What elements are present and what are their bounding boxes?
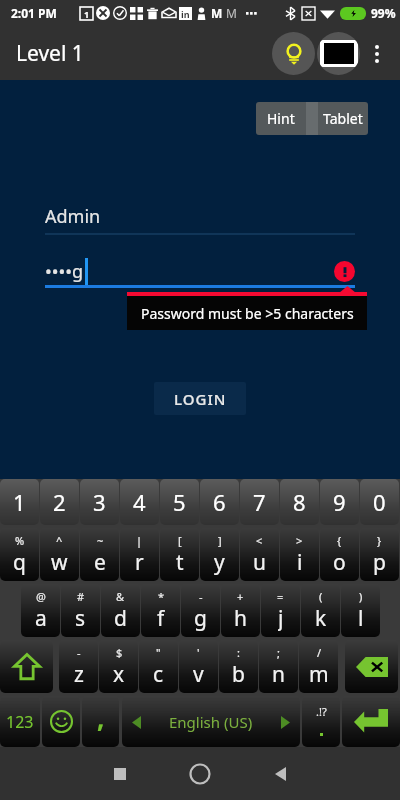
button[interactable]: ^ <box>40 528 79 581</box>
staticText: M <box>226 5 237 21</box>
button[interactable]: } <box>360 528 399 581</box>
staticText: < <box>256 533 263 548</box>
button[interactable]: $ <box>99 640 138 693</box>
staticText: ⋯ <box>245 6 258 21</box>
button[interactable]: " <box>139 640 178 693</box>
button[interactable]: 1 <box>0 479 39 525</box>
button[interactable]: 9 <box>320 479 359 525</box>
staticText: .!? <box>316 704 327 719</box>
staticText: { <box>337 533 342 548</box>
staticText: 5 <box>173 487 186 517</box>
button[interactable]: Recents <box>80 747 160 800</box>
button[interactable]: Hint <box>272 32 315 75</box>
button[interactable]: [ <box>160 528 199 581</box>
button[interactable]: ~ <box>80 528 119 581</box>
button[interactable]: ( <box>301 584 340 637</box>
staticText: - <box>77 645 81 660</box>
button[interactable]: Tablet <box>318 102 368 135</box>
staticText: m <box>309 660 329 687</box>
button[interactable]: Shift <box>0 640 53 693</box>
button[interactable]: Back <box>240 747 320 800</box>
staticText: ~ <box>97 533 104 548</box>
button[interactable]: 8 <box>280 479 319 525</box>
staticText: [ <box>178 533 182 548</box>
staticText: 2:01 PM <box>11 5 57 21</box>
staticText: Admin <box>45 204 101 229</box>
staticText: ] <box>218 533 222 548</box>
button[interactable]: - <box>181 584 220 637</box>
button[interactable]: Home <box>160 747 240 800</box>
staticText: l <box>358 604 364 631</box>
staticText: 8 <box>293 487 306 517</box>
button[interactable]: % <box>0 528 39 581</box>
staticText: @ <box>36 589 46 604</box>
staticText: 123 <box>6 711 34 733</box>
button[interactable]: More options <box>360 37 394 71</box>
button[interactable]: : <box>219 640 258 693</box>
staticText: ••••g <box>45 259 84 284</box>
button[interactable]: Comma <box>82 696 119 747</box>
staticText: : <box>237 645 240 660</box>
staticText: , <box>97 700 105 735</box>
staticText: 4 <box>133 487 146 517</box>
staticText: in <box>181 8 190 20</box>
button[interactable]: | <box>120 528 159 581</box>
staticText: g <box>194 604 207 631</box>
staticText: h <box>234 604 247 631</box>
button[interactable]: LOGIN <box>154 382 246 415</box>
button[interactable]: @ <box>21 584 60 637</box>
button[interactable]: # <box>61 584 100 637</box>
staticText: ; <box>277 645 280 660</box>
button[interactable]: < <box>240 528 279 581</box>
button[interactable]: 2 <box>40 479 79 525</box>
staticText: p <box>373 548 386 575</box>
button[interactable]: + <box>221 584 260 637</box>
button[interactable]: * <box>141 584 180 637</box>
button[interactable]: English (US) <box>122 696 300 747</box>
button[interactable]: - <box>59 640 98 693</box>
staticText: Password must be >5 characters <box>141 304 354 323</box>
staticText: 3 <box>93 487 106 517</box>
staticText: z <box>74 660 84 687</box>
button[interactable]: ) <box>341 584 380 637</box>
button[interactable]: 7 <box>240 479 279 525</box>
button[interactable]: { <box>320 528 359 581</box>
staticText: English (US) <box>169 712 253 732</box>
button[interactable]: = <box>261 584 300 637</box>
button[interactable]: Punctuation <box>302 696 340 747</box>
staticText: + <box>237 589 244 604</box>
button[interactable]: Emoji <box>42 696 80 747</box>
staticText: LOGIN <box>174 389 227 409</box>
staticText: ^ <box>56 533 63 548</box>
button[interactable]: ' <box>179 640 218 693</box>
staticText: u <box>253 548 266 575</box>
button[interactable]: ; <box>259 640 298 693</box>
staticText: # <box>77 589 85 604</box>
staticText: 99% <box>371 5 396 21</box>
staticText: Hint <box>267 109 295 128</box>
button[interactable]: 123 <box>0 696 40 747</box>
button[interactable]: 3 <box>80 479 119 525</box>
staticText: / <box>317 645 322 660</box>
button[interactable]: Tablet <box>317 32 360 75</box>
button[interactable]: 4 <box>120 479 159 525</box>
button[interactable]: / <box>299 640 338 693</box>
button[interactable]: 0 <box>360 479 399 525</box>
button[interactable]: 5 <box>160 479 199 525</box>
staticText: | <box>136 533 143 548</box>
staticText: x <box>113 660 125 687</box>
staticText: 2 <box>53 487 66 517</box>
staticText: 9 <box>333 487 346 517</box>
button[interactable]: 6 <box>200 479 239 525</box>
button[interactable]: Hint <box>256 102 306 135</box>
staticText: 7 <box>253 487 266 517</box>
staticText: c <box>153 660 164 687</box>
button[interactable]: ] <box>200 528 239 581</box>
button[interactable]: & <box>101 584 140 637</box>
staticText: = <box>277 589 284 604</box>
button[interactable]: Backspace <box>345 640 398 693</box>
staticText: r <box>135 548 144 575</box>
button[interactable]: Enter <box>342 696 400 747</box>
staticText: d <box>114 604 127 631</box>
button[interactable]: > <box>280 528 319 581</box>
